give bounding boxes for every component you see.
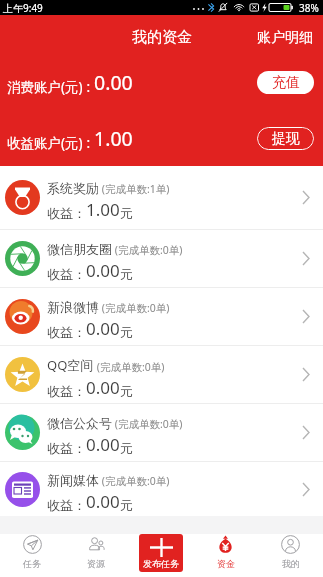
staticText: (完成单数:0单) <box>94 360 165 374</box>
button[interactable]: 系统奖励 <box>0 166 323 230</box>
button[interactable]: 我的 <box>258 534 323 577</box>
staticText: 上午9:49 <box>3 1 43 15</box>
staticText: 消费账户(元) <box>7 78 83 96</box>
staticText: (完成单数:1单) <box>99 182 170 196</box>
staticText: 收益： <box>47 324 86 340</box>
staticText: 收益： <box>47 205 86 221</box>
staticText: 系统奖励 <box>47 180 99 196</box>
staticText: 0.00 <box>86 376 120 399</box>
button[interactable]: 账户明细 <box>245 16 323 55</box>
staticText: 0.00 <box>86 259 120 282</box>
staticText: 0.00 <box>86 317 120 340</box>
staticText: 收益： <box>47 266 86 282</box>
staticText: 元 <box>120 324 133 340</box>
button[interactable]: 资金 <box>193 534 258 577</box>
staticText: 元 <box>120 440 133 456</box>
staticText: 0.00 <box>94 69 133 96</box>
staticText: 微信朋友圈 <box>47 241 112 257</box>
button[interactable]: 微信公众号 <box>0 404 323 462</box>
staticText: 元 <box>120 497 133 513</box>
button[interactable]: QQ空间 <box>0 346 323 404</box>
staticText: 0.00 <box>86 490 120 513</box>
staticText: 发布任务 <box>143 558 179 569</box>
staticText: 我的 <box>282 558 300 569</box>
staticText: 提现 <box>272 130 300 148</box>
button[interactable]: 新浪微博 <box>0 288 323 346</box>
staticText: 0.00 <box>86 433 120 456</box>
staticText: 资源 <box>87 558 105 569</box>
staticText: (完成单数:0单) <box>112 417 183 431</box>
staticText: : <box>83 134 94 152</box>
staticText: (完成单数:0单) <box>99 301 170 315</box>
button[interactable]: 充值 <box>257 71 314 94</box>
staticText: 元 <box>120 205 133 221</box>
staticText: 资金 <box>217 558 235 569</box>
staticText: QQ空间 <box>47 356 94 374</box>
staticText: 新闻媒体 <box>47 472 99 488</box>
staticText: 账户明细 <box>257 29 313 47</box>
staticText: (完成单数:0单) <box>99 474 170 488</box>
button[interactable]: 微信朋友圈 <box>0 230 323 288</box>
button[interactable]: 任务 <box>0 534 64 577</box>
staticText: 元 <box>120 266 133 282</box>
staticText: 1.00 <box>86 198 120 221</box>
staticText: : <box>83 78 94 96</box>
button[interactable]: 发布任务 <box>139 534 183 572</box>
staticText: 新浪微博 <box>47 299 99 315</box>
staticText: 我的资金 <box>132 28 192 47</box>
button[interactable]: 资源 <box>64 534 128 577</box>
button[interactable]: 提现 <box>257 127 314 150</box>
staticText: 收益： <box>47 383 86 399</box>
button[interactable]: 新闻媒体 <box>0 462 323 516</box>
staticText: 任务 <box>23 558 41 569</box>
staticText: 收益： <box>47 440 86 456</box>
staticText: (完成单数:0单) <box>112 243 183 257</box>
staticText: 收益： <box>47 497 86 513</box>
staticText: 38% <box>299 1 319 15</box>
staticText: 收益账户(元) <box>7 134 83 152</box>
staticText: 充值 <box>272 74 300 92</box>
staticText: 微信公众号 <box>47 415 112 431</box>
staticText: 1.00 <box>94 125 133 152</box>
staticText: 元 <box>120 383 133 399</box>
